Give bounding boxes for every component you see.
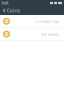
button[interactable]: 2 minutes ago	[0, 15, 64, 27]
button[interactable]: See details	[0, 28, 64, 40]
staticText: Coins	[6, 7, 20, 14]
staticText: See details	[41, 31, 59, 37]
button[interactable]: Back	[2, 6, 6, 14]
staticText: 9:41	[1, 0, 8, 6]
staticText: 2 minutes ago	[35, 19, 59, 24]
